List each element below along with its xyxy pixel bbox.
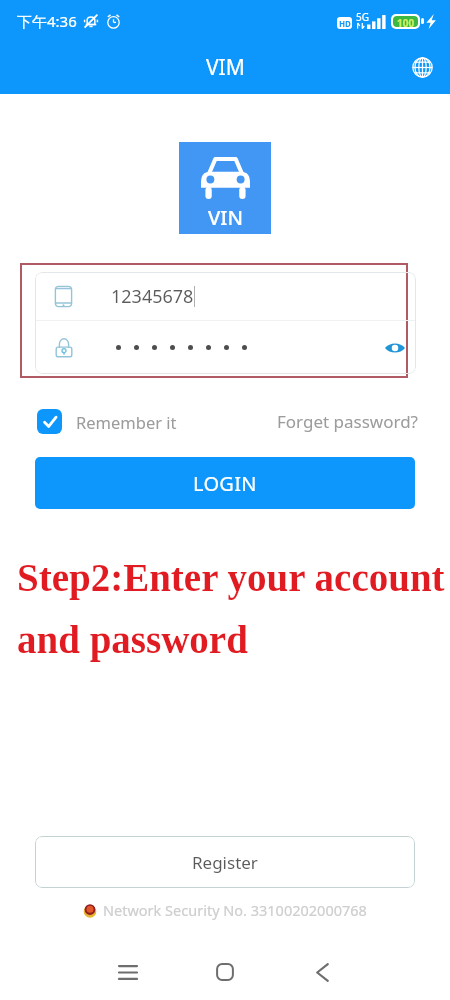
staticText: 5G [356,10,369,24]
button[interactable]: 12345678 [35,272,416,320]
staticText: LOGIN [193,470,257,497]
button[interactable]: Show password [35,321,416,374]
staticText: Step2:Enter your account and password [17,556,445,662]
staticText: Remember it [76,411,177,433]
button[interactable]: LOGIN [35,457,415,509]
staticText: Register [192,851,258,874]
staticText: 100 [397,16,415,27]
staticText: 12345678 [111,284,194,309]
button[interactable]: Show password [378,331,412,365]
staticText: VIM [206,53,245,82]
button[interactable]: Language [404,50,440,86]
staticText: HD [339,18,351,29]
button[interactable]: Recents [104,948,152,996]
staticText: Network Security No. 33100202000768 [103,900,367,920]
button[interactable]: Register [35,836,415,888]
button[interactable]: Remember it [37,409,177,434]
staticText: VIN [208,204,243,231]
button[interactable]: Home [201,948,249,996]
button[interactable]: Back [298,948,346,996]
staticText: 下午4:36 [17,11,77,31]
button[interactable]: Forget password? [277,410,418,433]
